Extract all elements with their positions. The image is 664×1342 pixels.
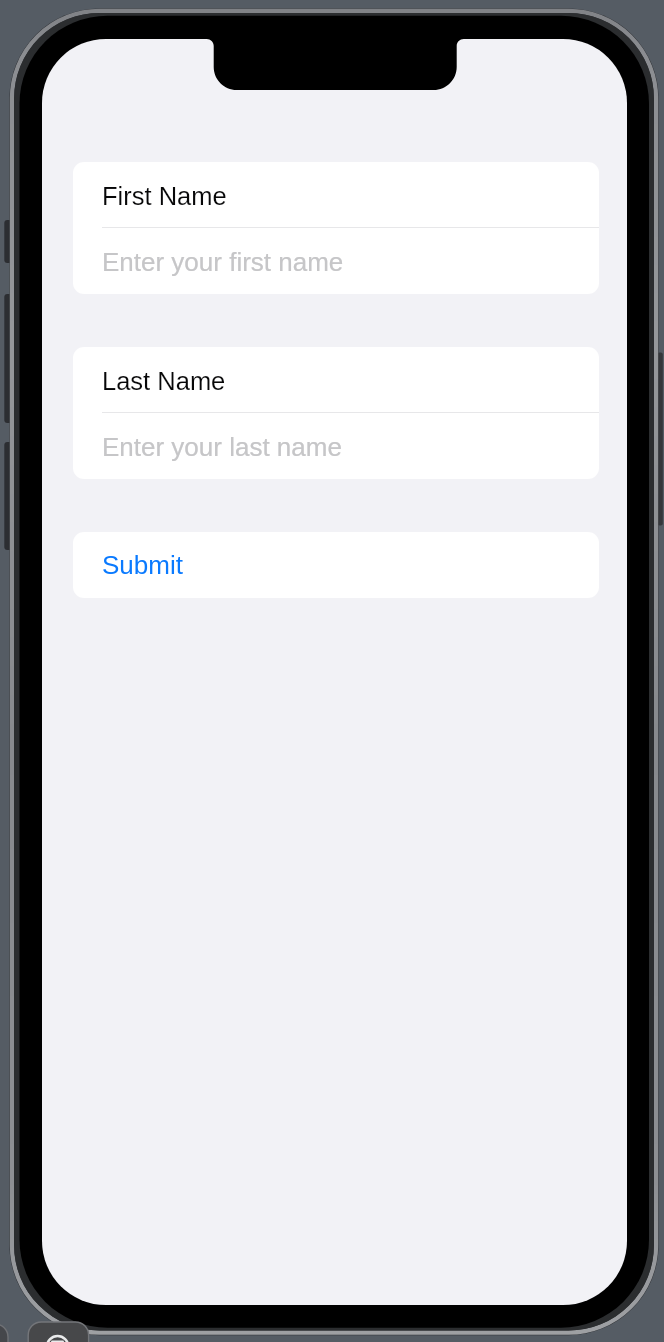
staticText: Enter your last name (102, 432, 342, 461)
button[interactable]: First Name (73, 162, 599, 294)
button[interactable]: Submit (73, 532, 599, 598)
staticText: Submit (102, 550, 183, 579)
staticText: First Name (102, 182, 227, 210)
staticText: Last Name (102, 367, 226, 395)
staticText: Enter your first name (102, 247, 344, 276)
button[interactable]: Last Name (73, 347, 599, 479)
